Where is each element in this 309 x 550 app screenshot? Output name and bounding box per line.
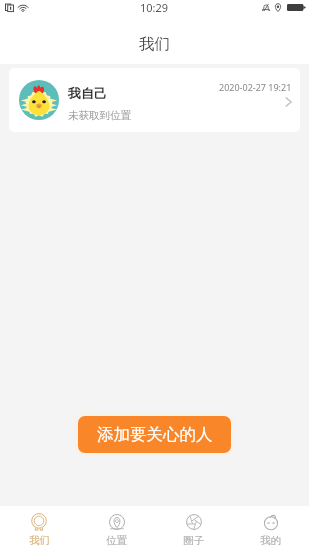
staticText: 未获取到位置 — [68, 109, 131, 122]
button[interactable]: 我自己 — [9, 68, 300, 132]
button[interactable]: 我们 — [0, 506, 78, 550]
staticText: 我们 — [29, 534, 50, 547]
button[interactable]: 位置 — [78, 506, 155, 550]
button[interactable]: 圈子 — [155, 506, 232, 550]
staticText: 我们 — [139, 34, 170, 54]
staticText: 我的 — [260, 534, 281, 547]
button[interactable]: 添加要关心的人 — [78, 416, 231, 453]
button[interactable]: 我的 — [232, 506, 309, 550]
staticText: 添加要关心的人 — [97, 424, 213, 445]
staticText: 2020-02-27 19:21 — [219, 81, 292, 93]
staticText: 10:29 — [140, 0, 169, 15]
staticText: 圈子 — [183, 534, 204, 547]
staticText: 我自己 — [68, 85, 107, 101]
staticText: 位置 — [106, 534, 127, 547]
